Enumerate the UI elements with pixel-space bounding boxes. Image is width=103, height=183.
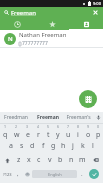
staticText: 3 (26, 124, 29, 129)
button[interactable]: 5 (43, 124, 53, 139)
staticText: 0 (97, 124, 100, 129)
button[interactable]: Dialpad (79, 90, 97, 108)
button[interactable]: d (27, 139, 38, 153)
button[interactable]: 4 (33, 124, 43, 139)
button[interactable]: English (32, 170, 77, 178)
staticText: 9 (87, 124, 90, 129)
staticText: c (37, 155, 41, 165)
staticText: d (30, 141, 35, 151)
button[interactable]: 0 (93, 124, 103, 139)
button[interactable]: 8 (73, 124, 83, 139)
staticText: h (61, 141, 66, 151)
button[interactable]: Recents (0, 18, 35, 30)
staticText: u (66, 130, 71, 139)
button[interactable]: s (16, 139, 27, 153)
staticText: k (81, 141, 85, 151)
button[interactable]: c (34, 153, 44, 167)
button[interactable]: 7 (63, 124, 73, 139)
staticText: j (72, 141, 74, 151)
staticText: q (3, 130, 8, 139)
staticText: l (92, 141, 94, 151)
button[interactable]: a (5, 139, 16, 153)
button[interactable]: Voice input (94, 112, 103, 123)
button[interactable]: Freeman (32, 112, 63, 123)
button[interactable]: z (14, 153, 24, 167)
button[interactable]: Clear (92, 9, 99, 16)
button[interactable]: 9 (83, 124, 93, 139)
staticText: 7 (67, 124, 70, 129)
staticText: y (56, 130, 60, 139)
button[interactable]: 2 (11, 124, 22, 139)
staticText: x (27, 155, 31, 165)
button[interactable]: 3 (22, 124, 33, 139)
staticText: z (17, 155, 21, 165)
button[interactable]: Contacts (69, 18, 103, 30)
button[interactable]: Freedman (0, 112, 32, 123)
staticText: i (77, 130, 79, 139)
staticText: t (47, 130, 50, 139)
staticText: N (8, 35, 13, 43)
button[interactable]: Backspace (88, 153, 103, 167)
staticText: . (81, 170, 83, 178)
staticText: s (20, 141, 24, 151)
button[interactable]: Freeman's (63, 112, 94, 123)
staticText: Freedman (4, 114, 28, 121)
staticText: f (42, 141, 45, 151)
staticText: r (37, 130, 40, 139)
button[interactable]: Favorites (35, 18, 69, 30)
button[interactable]: j (68, 139, 78, 153)
staticText: English (48, 172, 62, 177)
staticText: Freeman (37, 114, 59, 121)
button[interactable]: Search (4, 7, 99, 18)
staticText: 777777777 (22, 40, 48, 47)
staticText: Nathan Freeman (19, 31, 67, 39)
button[interactable]: n (66, 153, 77, 167)
button[interactable]: 6 (53, 124, 63, 139)
button[interactable]: ?123 (1, 167, 14, 181)
button[interactable]: m (77, 153, 88, 167)
other: Search (4, 10, 9, 15)
staticText: g (51, 141, 56, 151)
button[interactable]: v (44, 153, 55, 167)
button[interactable]: g (48, 139, 58, 153)
staticText: n (69, 155, 74, 165)
staticText: Freeman's (66, 114, 91, 121)
staticText: 2 (15, 124, 18, 129)
staticText: 5 (47, 124, 50, 129)
button[interactable]: N (0, 30, 103, 47)
staticText: 9:00 (93, 1, 101, 6)
staticText: ?123 (3, 172, 12, 177)
staticText: , (17, 170, 19, 178)
staticText: m (79, 155, 86, 165)
staticText: o (86, 130, 91, 139)
staticText: 4 (37, 124, 40, 129)
staticText: 1 (4, 124, 7, 129)
staticText: v (48, 155, 52, 165)
staticText: 8 (77, 124, 80, 129)
button[interactable]: l (88, 139, 98, 153)
button[interactable]: . (77, 167, 86, 181)
button[interactable]: Shift (0, 153, 14, 167)
button[interactable]: Enter (89, 169, 99, 179)
button[interactable]: 1 (0, 124, 11, 139)
button[interactable]: , (14, 167, 22, 181)
staticText: 6 (57, 124, 60, 129)
button[interactable]: f (38, 139, 48, 153)
staticText: w (14, 130, 20, 139)
staticText: e (26, 130, 30, 139)
button[interactable]: x (24, 153, 34, 167)
staticText: p (96, 130, 101, 139)
button[interactable]: h (58, 139, 68, 153)
button[interactable]: b (55, 153, 66, 167)
button[interactable]: k (78, 139, 88, 153)
staticText: Freeman (11, 9, 92, 17)
button[interactable]: Emoji (22, 167, 32, 181)
staticText: a (9, 141, 13, 151)
staticText: b (58, 155, 63, 165)
